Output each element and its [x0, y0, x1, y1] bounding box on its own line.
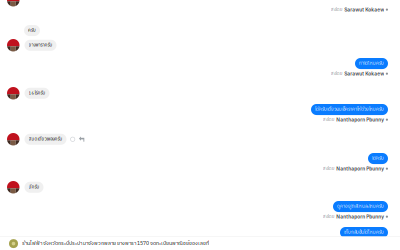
- staticText: Sarawut Kokaew: [344, 71, 384, 77]
- staticText: สมดเดียวเพลงครับ: [28, 136, 62, 143]
- button[interactable]: ได้ครับ: [368, 153, 388, 164]
- staticText: ดูค่าอยู่ใกล้ไหนละไหมครับ: [337, 203, 384, 210]
- button[interactable]: เก็บกลับขั้นได้ไหมครับ: [340, 227, 388, 238]
- staticText: ได้ครับ: [372, 155, 384, 162]
- staticText: ครับ: [28, 27, 36, 34]
- staticText: ยางพาราครับ: [28, 42, 52, 49]
- button[interactable]: 16ไร่ครับ: [24, 88, 49, 99]
- button[interactable]: ยางพาราครับ: [24, 40, 56, 51]
- button[interactable]: มีครับ: [24, 182, 43, 193]
- staticText: Sarawut Kokaew: [344, 7, 384, 12]
- staticText: ส่งโดย: [323, 213, 335, 220]
- staticText: มีครับ: [28, 184, 39, 191]
- button[interactable]: ครับ: [24, 25, 40, 36]
- staticText: ได้ครับเดี๋ยวผมเช็คราคาให้ด้วยไหมครับ: [315, 106, 384, 113]
- staticText: ส่งโดย: [331, 70, 343, 77]
- staticText: Nanthaporn Pbunny: [336, 214, 384, 220]
- staticText: ส่งโดย: [323, 116, 335, 123]
- staticText: ส่งโดย: [331, 6, 343, 13]
- button[interactable]: ทำได้ไหมครับ: [355, 58, 388, 69]
- staticText: เก็บกลับขั้นได้ไหมครับ: [344, 229, 384, 236]
- staticText: 16ไร่ครับ: [28, 90, 45, 97]
- staticText: ทำได้ไหมครับ: [359, 60, 384, 67]
- button[interactable]: ดูค่าอยู่ใกล้ไหนละไหมครับ: [333, 201, 388, 212]
- staticText: Nanthaporn Pbunny: [336, 117, 384, 123]
- button[interactable]: สมดเดียวเพลงครับ: [24, 134, 66, 145]
- staticText: ร้านไฟฟ้า จังหวัดกระบี่ประปา มาจังพวกพลา…: [22, 239, 209, 248]
- staticText: Nanthaporn Pbunny: [336, 166, 384, 172]
- staticText: ส่งโดย: [323, 165, 335, 172]
- button[interactable]: ได้ครับเดี๋ยวผมเช็คราคาให้ด้วยไหมครับ: [311, 104, 388, 115]
